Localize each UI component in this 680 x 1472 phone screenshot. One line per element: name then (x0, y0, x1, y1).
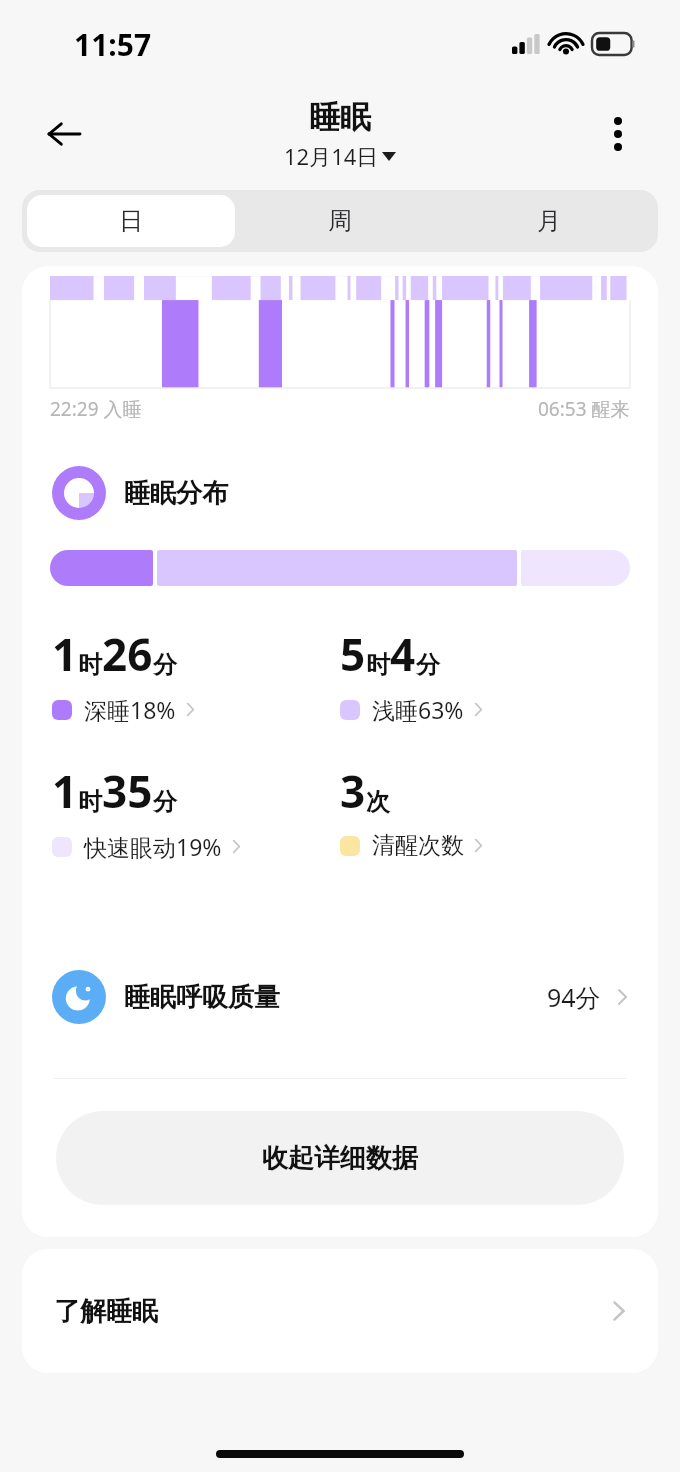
staticText: 清醒次数 (372, 831, 464, 860)
staticText: 睡眠 (309, 98, 371, 137)
button[interactable]: 收起详细数据 (56, 1111, 624, 1205)
staticText: 22:29 入睡 (50, 396, 142, 422)
staticText: 收起详细数据 (262, 1142, 418, 1175)
staticText: 睡眠分布 (124, 477, 228, 510)
button[interactable]: 3 (340, 761, 628, 860)
staticText: 睡眠呼吸质量 (124, 981, 280, 1014)
staticText: 月 (537, 206, 561, 236)
button[interactable]: Back (28, 98, 100, 170)
staticText: 日 (119, 206, 143, 236)
button[interactable]: 1 (52, 761, 340, 862)
button[interactable]: 12月14日 (284, 141, 396, 171)
button[interactable]: More options (586, 102, 650, 166)
staticText: 11:57 (74, 24, 152, 65)
button[interactable]: 睡眠呼吸质量 (52, 962, 628, 1032)
staticText: 94分 (547, 980, 601, 1014)
staticText: 分 (416, 650, 440, 680)
staticText: 1 (52, 761, 78, 821)
button[interactable]: 日 (27, 195, 235, 247)
button[interactable]: 月 (444, 195, 653, 247)
staticText: 35 (102, 761, 153, 821)
button[interactable]: 周 (235, 195, 444, 247)
staticText: 5 (340, 624, 366, 684)
staticText: 快速眼动19% (84, 831, 222, 862)
staticText: 4 (390, 624, 416, 684)
staticText: 时 (78, 650, 102, 680)
staticText: 06:53 醒来 (538, 396, 630, 422)
staticText: 时 (366, 650, 390, 680)
staticText: 分 (153, 650, 177, 680)
staticText: 3 (340, 761, 366, 821)
button[interactable]: 了解睡眠 (22, 1249, 658, 1373)
button[interactable]: 睡眠分布 (52, 466, 628, 520)
staticText: 26 (102, 624, 153, 684)
button[interactable]: 1 (52, 624, 340, 725)
staticText: 次 (366, 787, 390, 817)
staticText: 周 (328, 206, 352, 236)
staticText: 时 (78, 787, 102, 817)
staticText: 分 (153, 787, 177, 817)
staticText: 深睡18% (84, 694, 176, 725)
staticText: 了解睡眠 (54, 1295, 158, 1328)
button[interactable]: 5 (340, 624, 628, 725)
staticText: 浅睡63% (372, 694, 464, 725)
staticText: 12月14日 (284, 141, 379, 171)
staticText: 1 (52, 624, 78, 684)
